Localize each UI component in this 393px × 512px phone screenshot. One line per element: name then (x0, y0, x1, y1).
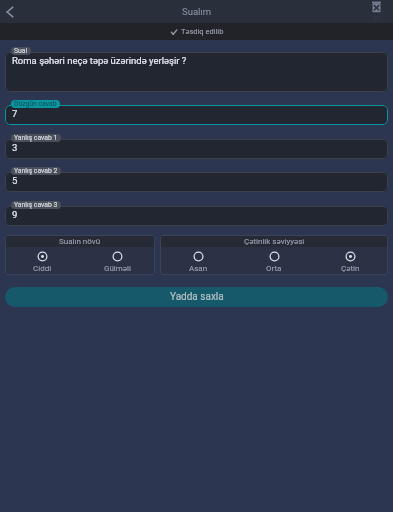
staticText: Sualım (182, 6, 212, 17)
button[interactable]: 9 (5, 206, 388, 226)
button[interactable]: 3 (5, 139, 388, 159)
staticText: Yadda saxla (170, 291, 224, 303)
staticText: Asan (189, 264, 208, 273)
staticText: Sualın növü (59, 237, 101, 246)
button[interactable]: Orta (236, 251, 312, 273)
staticText: Sual (14, 47, 28, 55)
button[interactable]: Ciddi (5, 251, 80, 273)
staticText: Yanlış cavab 1 (14, 134, 58, 142)
button[interactable]: Asan (160, 251, 236, 273)
button[interactable]: 7 (5, 105, 388, 125)
staticText: Gülməli (104, 264, 131, 273)
staticText: Yanlış cavab 3 (14, 201, 58, 209)
button[interactable]: Çətin (312, 251, 388, 273)
staticText: 5 (12, 175, 18, 186)
staticText: 7 (12, 108, 18, 119)
button[interactable]: 5 (5, 172, 388, 192)
staticText: Düzgün cavab (14, 100, 57, 108)
staticText: Ciddi (33, 264, 52, 273)
button[interactable]: Roma şəhəri neçə təpə üzərində yerləşir … (5, 52, 388, 92)
button[interactable]: Gülməli (80, 251, 155, 273)
staticText: Çətinlik səviyyəsi (244, 237, 305, 246)
staticText: 3 (12, 142, 18, 153)
staticText: Təsdiq edilib (181, 27, 224, 36)
staticText: Çətin (341, 264, 360, 273)
staticText: 9 (12, 209, 18, 220)
staticText: Yanlış cavab 2 (14, 167, 58, 175)
button[interactable]: Yadda saxla (5, 287, 388, 307)
staticText: Roma şəhəri neçə təpə üzərində yerləşir … (12, 55, 187, 66)
button[interactable]: Back (0, 0, 19, 23)
button[interactable]: Delete (360, 0, 393, 23)
staticText: Orta (266, 264, 282, 273)
